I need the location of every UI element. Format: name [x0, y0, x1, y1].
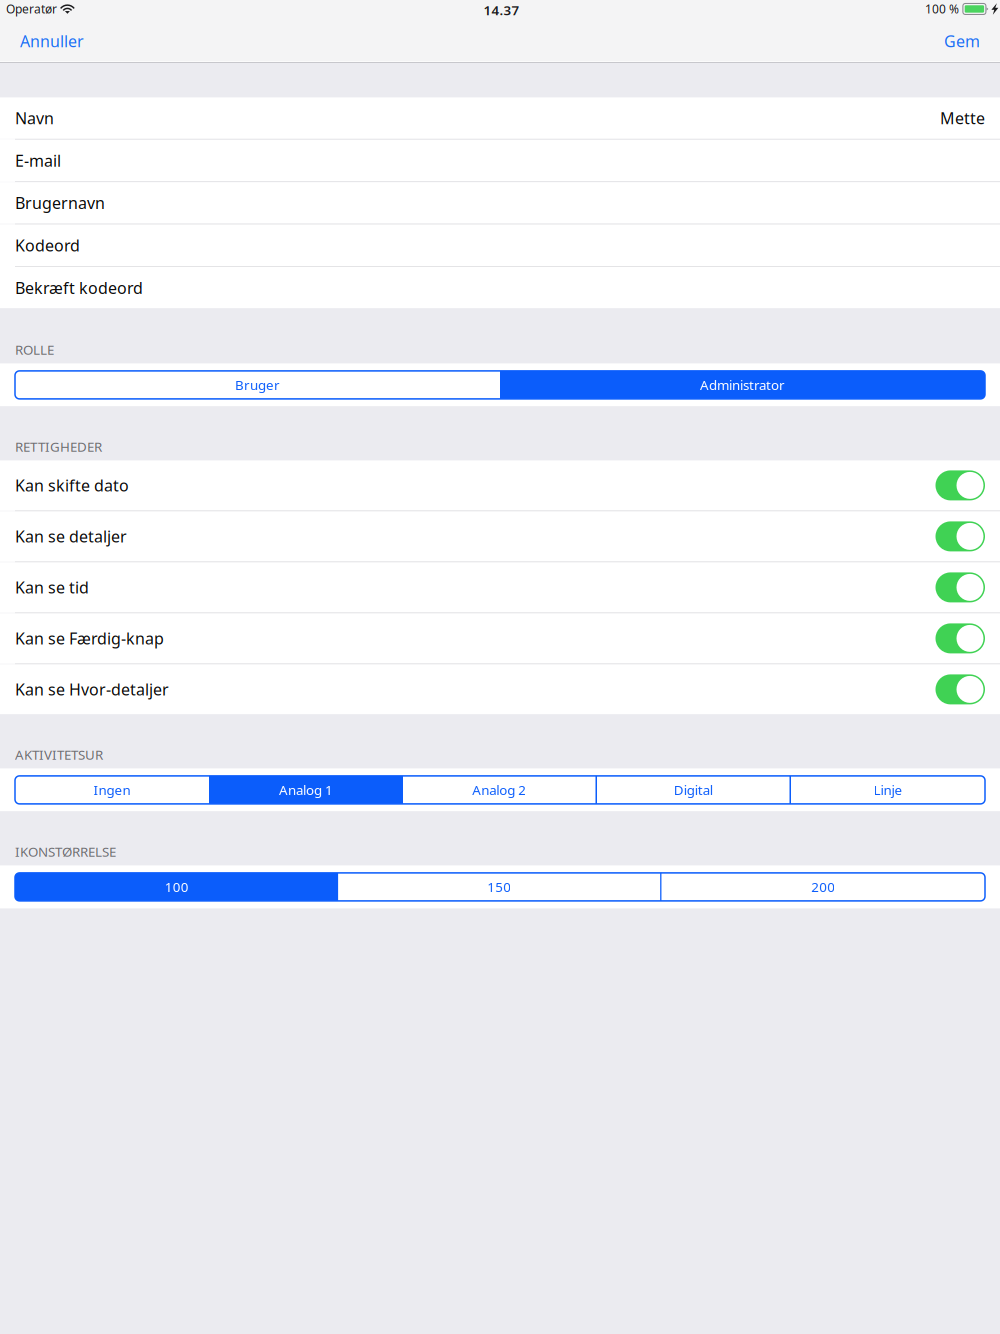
button[interactable]: Kan se tid — [0, 562, 1000, 612]
staticText: 200 — [811, 878, 835, 896]
staticText: Kan se Hvor-detaljer — [15, 679, 169, 700]
button[interactable]: Brugernavn — [0, 182, 1000, 224]
staticText: Administrator — [700, 376, 785, 394]
staticText: Annuller — [20, 30, 84, 52]
staticText: IKONSTØRRELSE — [15, 843, 116, 860]
button[interactable]: Analog 1 — [209, 776, 403, 804]
staticText: Analog 2 — [472, 781, 526, 799]
staticText: 14.37 — [483, 1, 519, 19]
button[interactable]: E-mail — [0, 140, 1000, 181]
staticText: Kan se Færdig-knap — [15, 628, 164, 649]
staticText: Bekræft kodeord — [15, 277, 143, 298]
staticText: Mette — [940, 107, 985, 129]
button[interactable]: Kan skifte dato — [0, 460, 1000, 510]
staticText: ROLLE — [15, 341, 54, 358]
staticText: Kan skifte dato — [15, 475, 129, 496]
staticText: Bruger — [235, 376, 280, 394]
staticText: Kan se tid — [15, 577, 89, 598]
button[interactable]: 150 — [338, 873, 660, 901]
button[interactable]: Administrator — [500, 371, 985, 399]
button[interactable]: Kan se Færdig-knap — [0, 613, 1000, 663]
button[interactable]: Kan se detaljer — [0, 511, 1000, 561]
button[interactable]: Bekræft kodeord — [0, 267, 1000, 308]
button[interactable]: Digital — [597, 776, 789, 804]
staticText: 100 % — [925, 1, 959, 17]
staticText: Digital — [674, 781, 713, 799]
staticText: Gem — [944, 30, 980, 52]
staticText: RETTIGHEDER — [15, 438, 102, 455]
button[interactable]: Linje — [791, 776, 985, 804]
staticText: Kodeord — [15, 235, 80, 256]
button[interactable]: Bruger — [15, 371, 500, 399]
button[interactable]: Kodeord — [0, 225, 1000, 266]
staticText: 100 — [165, 878, 189, 896]
staticText: Kan se detaljer — [15, 526, 127, 547]
button[interactable]: Ingen — [15, 776, 209, 804]
staticText: Brugernavn — [15, 192, 105, 213]
button[interactable]: Kan se Hvor-detaljer — [0, 664, 1000, 714]
button[interactable]: 200 — [662, 873, 985, 901]
button[interactable]: Annuller — [0, 24, 104, 58]
staticText: E-mail — [15, 150, 61, 171]
staticText: Navn — [15, 107, 54, 129]
button[interactable]: Navn — [0, 97, 1000, 139]
staticText: 150 — [487, 878, 511, 896]
staticText: Linje — [873, 781, 902, 799]
staticText: Operatør — [6, 1, 57, 17]
button[interactable]: 100 — [15, 873, 338, 901]
button[interactable]: Gem — [924, 24, 1000, 58]
button[interactable]: Analog 2 — [403, 776, 595, 804]
staticText: Analog 1 — [279, 781, 333, 799]
staticText: Ingen — [93, 781, 130, 799]
staticText: AKTIVITETSUR — [15, 746, 103, 763]
